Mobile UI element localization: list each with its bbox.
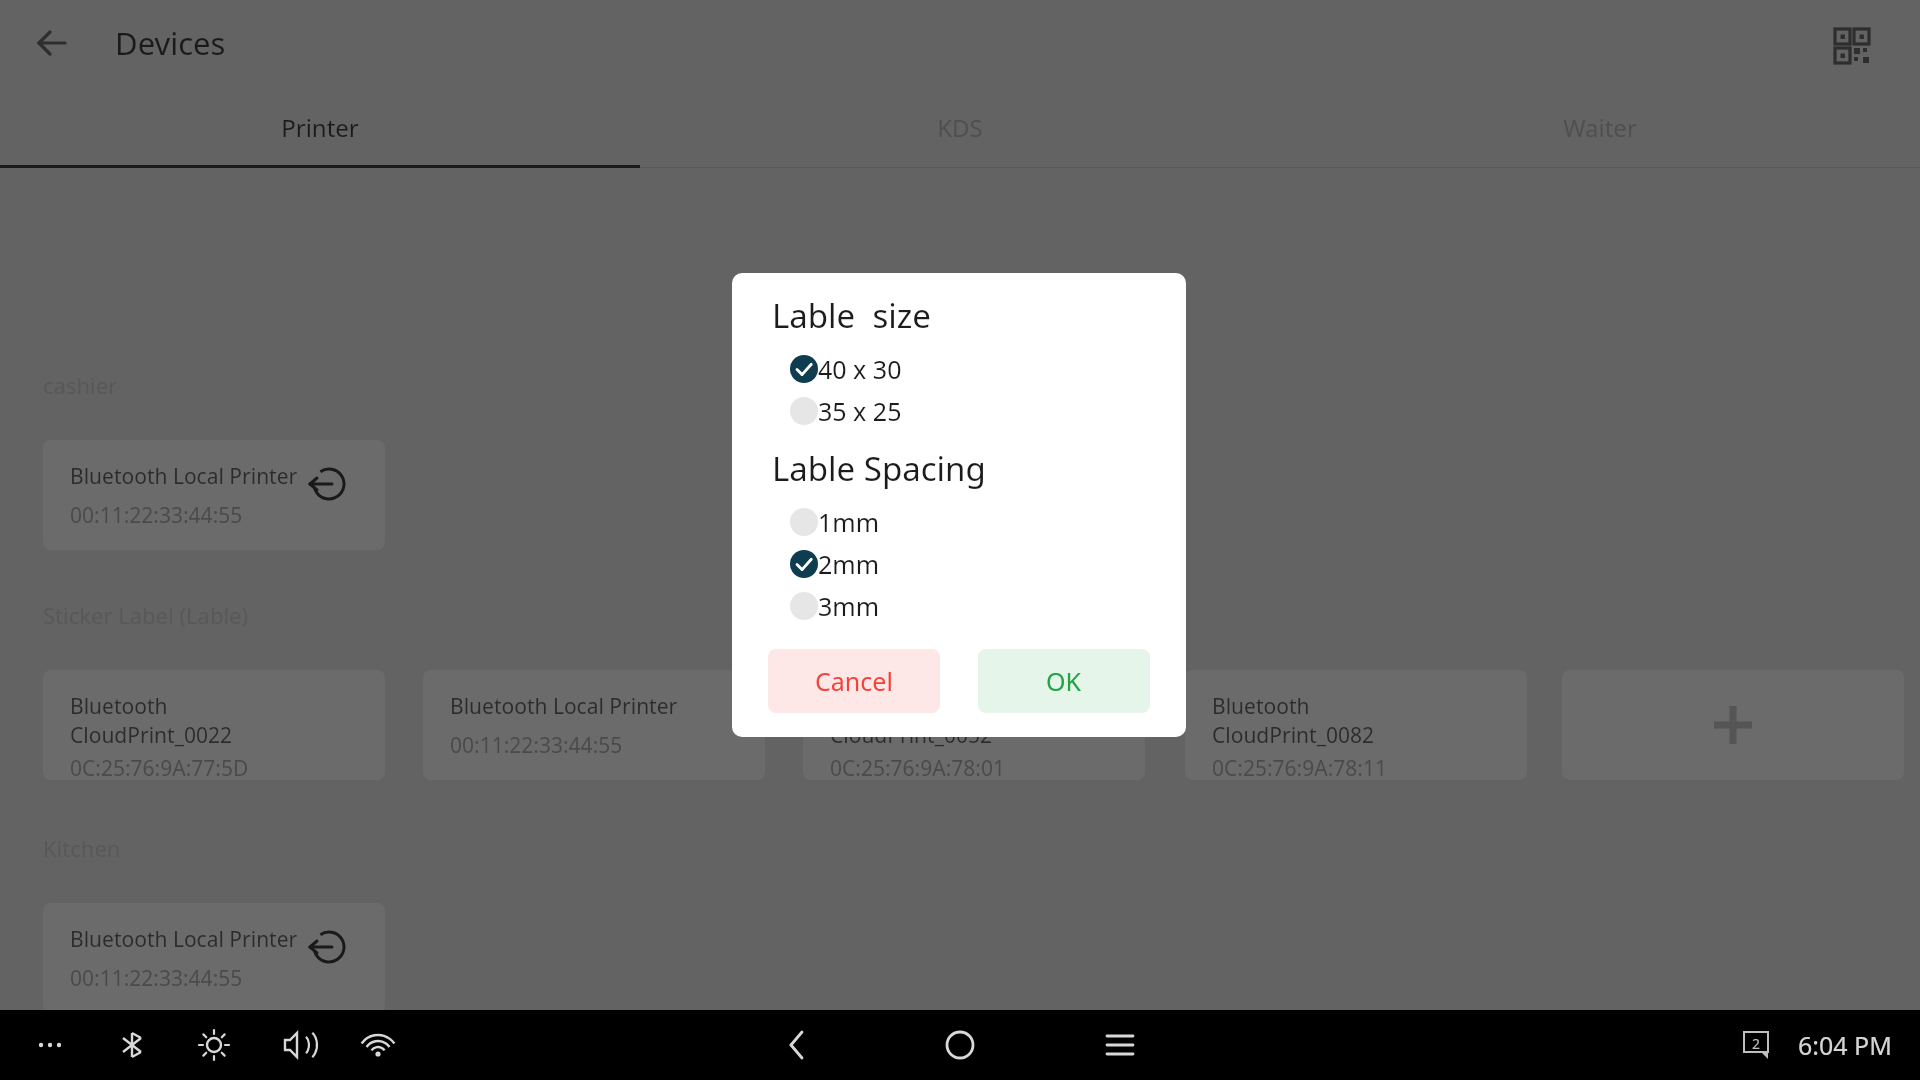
staticText: Waiter (1563, 111, 1637, 144)
staticText: 2 (1752, 1034, 1761, 1053)
button[interactable]: Bluetooth (803, 670, 1145, 780)
staticText: KDS (937, 111, 983, 144)
staticText: Devices (115, 22, 226, 64)
button[interactable]: Recent apps (1100, 1025, 1140, 1065)
staticText: Bluetooth (70, 692, 168, 721)
staticText: 6:04 PM (1798, 1028, 1892, 1062)
button[interactable]: Wi-Fi (358, 1025, 398, 1065)
staticText: 40 x 30 (818, 352, 902, 386)
button[interactable]: Printer (0, 86, 640, 168)
button[interactable]: 1mm (732, 501, 1186, 543)
button[interactable]: OK (978, 649, 1150, 713)
staticText: Bluetooth (830, 692, 928, 721)
staticText: 1mm (818, 505, 880, 539)
staticText: OK (1046, 664, 1082, 698)
staticText: 00:11:22:33:44:55 (70, 964, 243, 993)
staticText: 00:11:22:33:44:55 (70, 501, 243, 530)
button[interactable]: Back (780, 1025, 820, 1065)
staticText: CloudPrint_0022 (70, 721, 233, 750)
button[interactable]: Back (26, 18, 76, 68)
button[interactable]: Cancel (768, 649, 940, 713)
button[interactable]: Brightness (194, 1025, 234, 1065)
button[interactable]: Bluetooth (112, 1025, 152, 1065)
button[interactable]: Home (940, 1025, 980, 1065)
staticText: Sticker Label (Lable) (43, 600, 249, 630)
staticText: 2mm (818, 547, 880, 581)
staticText: Cancel (815, 664, 893, 698)
button[interactable]: Bluetooth (43, 670, 385, 780)
button[interactable]: 35 x 25 (732, 390, 1186, 432)
button[interactable]: Disconnect (311, 929, 347, 965)
button[interactable]: Bluetooth (1185, 670, 1527, 780)
staticText: Lable size (772, 293, 931, 338)
staticText: Bluetooth Local Printer (70, 925, 298, 954)
staticText: CloudPrint_0052 (830, 721, 993, 750)
staticText: Bluetooth Local Printer (450, 692, 678, 721)
staticText: 0C:25:76:9A:77:5D (70, 754, 249, 780)
staticText: 0C:25:76:9A:78:01 (830, 754, 1005, 780)
staticText: 00:11:22:33:44:55 (450, 731, 623, 760)
button[interactable]: 2mm (732, 543, 1186, 585)
staticText: cashier (43, 370, 118, 400)
button[interactable]: Scan QR code (1826, 20, 1872, 66)
staticText: CloudPrint_0082 (1212, 721, 1375, 750)
button[interactable]: 40 x 30 (732, 348, 1186, 390)
button[interactable]: More options (30, 1025, 70, 1065)
button[interactable]: Disconnect (311, 466, 347, 502)
staticText: Printer (281, 111, 359, 144)
staticText: Lable Spacing (772, 446, 986, 491)
staticText: Bluetooth Local Printer (70, 462, 298, 491)
other: 2 notifications (1742, 1030, 1776, 1060)
button[interactable]: Bluetooth Local Printer (43, 903, 385, 1013)
button[interactable]: 3mm (732, 585, 1186, 627)
button[interactable]: Bluetooth Local Printer (423, 670, 765, 780)
staticText: 0C:25:76:9A:78:11 (1212, 754, 1387, 780)
staticText: 35 x 25 (818, 394, 902, 428)
staticText: 3mm (818, 589, 880, 623)
staticText: Bluetooth (1212, 692, 1310, 721)
button[interactable]: Bluetooth Local Printer (43, 440, 385, 550)
staticText: Kitchen (43, 833, 121, 863)
button[interactable]: Volume (276, 1025, 316, 1065)
